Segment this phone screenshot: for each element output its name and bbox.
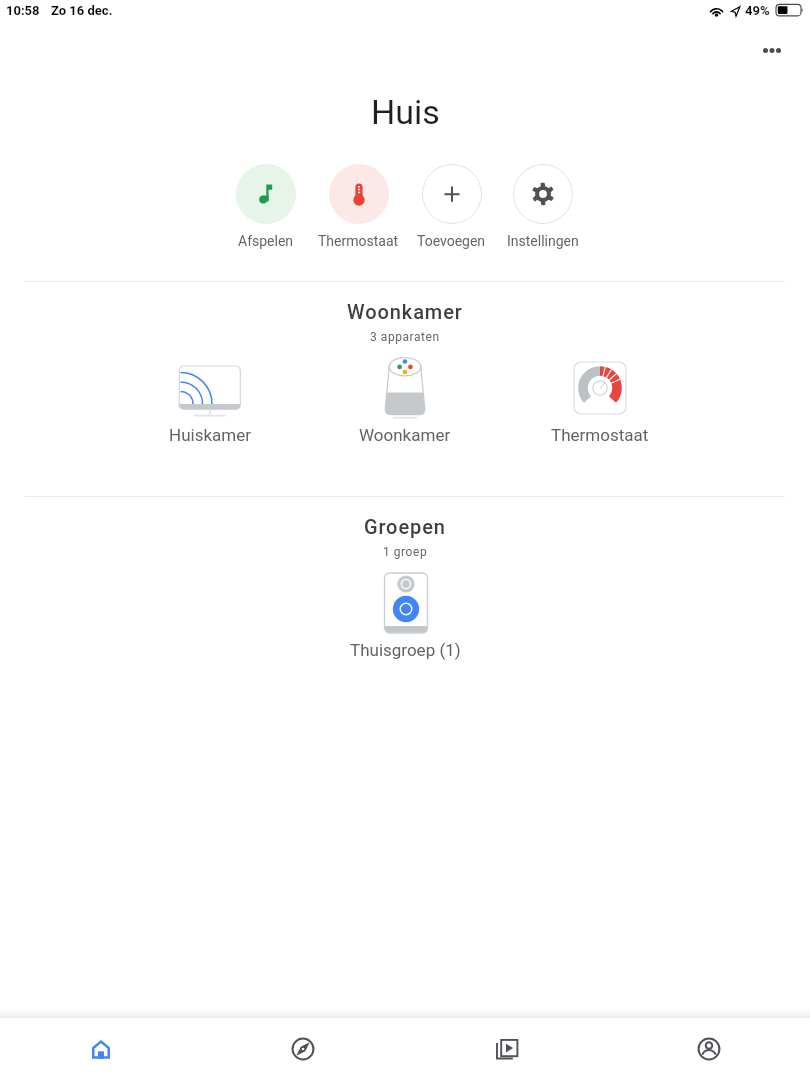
staticText: Thermostaat [551, 425, 649, 445]
button[interactable]: Thermostaat [530, 350, 670, 445]
staticText: Huis [371, 92, 440, 132]
button[interactable]: Toevoegen [405, 164, 497, 249]
staticText: 10:58 [6, 3, 40, 18]
staticText: Thuisgroep (1) [350, 640, 461, 660]
button[interactable]: Afspelen [220, 164, 312, 249]
button[interactable]: Ontdekken [202, 1018, 404, 1080]
staticText: 1 groep [383, 545, 428, 559]
staticText: Woonkamer [359, 425, 451, 445]
staticText: Toevoegen [417, 233, 486, 249]
staticText: Zo 16 dec. [51, 3, 113, 18]
button[interactable]: Thuisgroep (1) [345, 571, 465, 660]
button[interactable]: Huiskamer [140, 350, 280, 445]
button[interactable]: Media [404, 1018, 607, 1080]
staticText: Huiskamer [169, 425, 251, 445]
button[interactable]: Thermostaat [312, 164, 404, 249]
staticText: Instellingen [507, 233, 579, 249]
staticText: Groepen [364, 515, 446, 538]
button[interactable]: Meer opties [752, 30, 792, 70]
button[interactable]: Account [607, 1018, 810, 1080]
button[interactable]: Instellingen [497, 164, 589, 249]
staticText: Afspelen [238, 233, 294, 249]
button[interactable]: Woonkamer [335, 350, 475, 445]
staticText: Thermostaat [318, 233, 399, 249]
staticText: 3 apparaten [370, 330, 440, 344]
staticText: Woonkamer [347, 300, 463, 323]
button[interactable]: Huis [0, 1018, 202, 1080]
staticText: 49% [745, 3, 770, 18]
